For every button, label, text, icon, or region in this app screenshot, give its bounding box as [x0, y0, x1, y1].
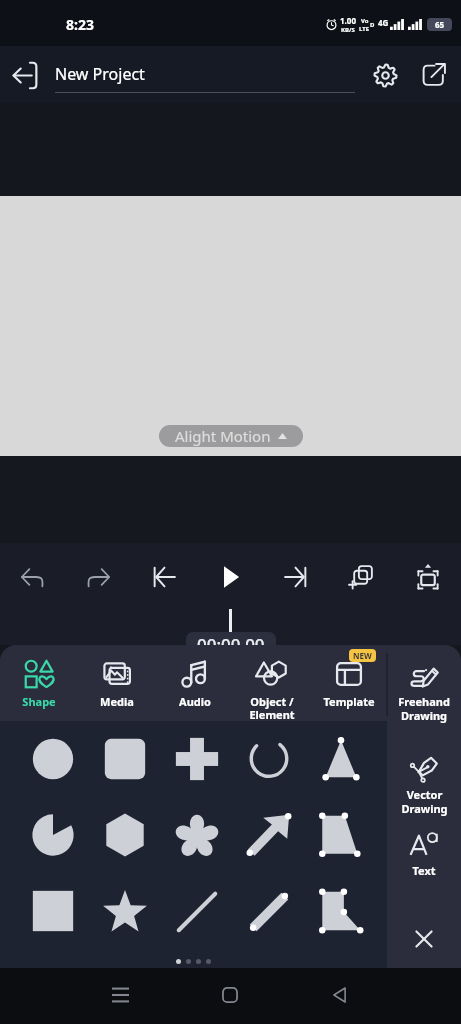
button[interactable]: NEW — [310, 645, 387, 721]
button[interactable]: Play — [197, 543, 263, 613]
button[interactable]: Home — [208, 973, 252, 1017]
button[interactable]: Shape — [89, 873, 161, 949]
staticText: 1.00 — [340, 15, 356, 26]
staticText: LTE — [359, 25, 370, 33]
button[interactable]: Back — [7, 56, 45, 94]
button[interactable]: Text — [387, 826, 461, 880]
button[interactable]: Audio — [156, 645, 233, 721]
button[interactable]: Go to end — [263, 543, 329, 613]
button[interactable]: Shape — [89, 797, 161, 873]
button[interactable]: Shape — [0, 645, 78, 721]
button[interactable]: Settings — [366, 56, 404, 94]
button[interactable]: Shape — [17, 721, 89, 797]
button[interactable]: Freehand Drawing — [387, 657, 461, 725]
staticText: 4G — [378, 17, 389, 28]
button[interactable]: Media — [78, 645, 156, 721]
staticText: Media — [100, 694, 134, 709]
staticText: Freehand Drawing — [398, 694, 450, 723]
staticText: Shape — [22, 694, 56, 709]
button[interactable]: Shape — [17, 873, 89, 949]
button[interactable]: Shape — [89, 721, 161, 797]
button[interactable]: Shape — [305, 721, 377, 797]
staticText: D — [370, 21, 375, 29]
staticText: Vo — [361, 17, 369, 25]
button[interactable]: Shape — [233, 797, 305, 873]
staticText: New Project — [55, 63, 145, 85]
staticText: KB/S — [341, 26, 355, 34]
staticText: Object / Element — [249, 694, 295, 722]
button[interactable]: Add layer — [329, 543, 395, 613]
button[interactable]: Close — [402, 917, 446, 961]
button[interactable]: Vector Drawing — [387, 750, 461, 818]
button[interactable]: Shape — [161, 873, 233, 949]
staticText: Template — [323, 694, 375, 709]
button[interactable]: Shape — [161, 797, 233, 873]
button[interactable]: New Project — [55, 63, 355, 93]
staticText: Audio — [179, 694, 211, 709]
button[interactable]: Alight Motion — [159, 425, 303, 447]
staticText: Alight Motion — [175, 426, 271, 446]
button[interactable]: Undo — [0, 543, 65, 613]
staticText: NEW — [353, 650, 372, 661]
button[interactable]: Shape — [161, 721, 233, 797]
button[interactable]: Go to start — [131, 543, 197, 613]
button[interactable]: Shape — [233, 873, 305, 949]
button[interactable]: Recents — [98, 973, 142, 1017]
button[interactable]: Shape — [233, 721, 305, 797]
button[interactable]: Export — [415, 56, 453, 94]
button[interactable]: Redo — [65, 543, 131, 613]
staticText: 8:23 — [66, 15, 94, 34]
staticText: Vector Drawing — [401, 787, 448, 816]
button[interactable]: Fit — [395, 543, 461, 613]
button[interactable]: Back — [318, 973, 362, 1017]
button[interactable]: Shape — [17, 797, 89, 873]
button[interactable]: Shape — [305, 797, 377, 873]
staticText: Text — [412, 863, 436, 878]
staticText: 00:00.00 — [197, 633, 265, 656]
button[interactable]: Object / Element — [233, 645, 310, 721]
staticText: 65 — [435, 19, 445, 30]
button[interactable]: Shape — [305, 873, 377, 949]
